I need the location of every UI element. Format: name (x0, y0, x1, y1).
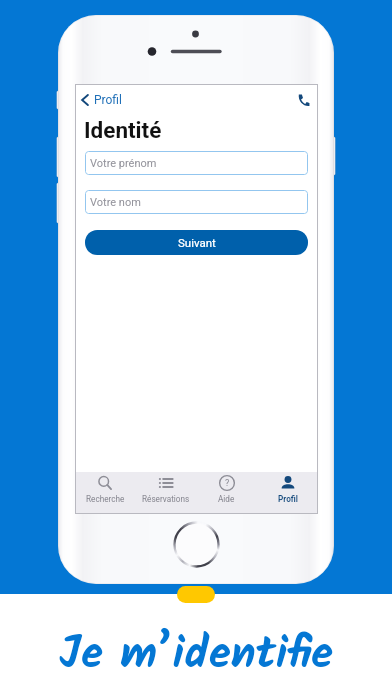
staticText: Votre prénom (90, 157, 157, 170)
button[interactable]: Suivant (85, 230, 308, 255)
staticText: Aide (218, 494, 235, 504)
staticText: ? (225, 478, 230, 489)
button[interactable]: Profil (77, 89, 124, 111)
staticText: Réservations (142, 494, 190, 504)
button[interactable]: Votre nom (85, 190, 308, 214)
button[interactable]: Réservations (135, 472, 196, 514)
button[interactable]: Recherche (75, 472, 135, 514)
button[interactable]: ? (196, 472, 257, 514)
button[interactable]: Votre prénom (85, 151, 308, 175)
staticText: Votre nom (90, 196, 141, 209)
staticText: Recherche (86, 494, 125, 504)
staticText: Profil (278, 494, 298, 504)
button[interactable]: Appeler (296, 93, 310, 107)
staticText: Profil (94, 93, 122, 107)
staticText: Suivant (178, 236, 216, 249)
staticText: Je m’identifie (59, 620, 333, 692)
staticText: Identité (84, 117, 162, 143)
button[interactable]: Profil (257, 472, 318, 514)
